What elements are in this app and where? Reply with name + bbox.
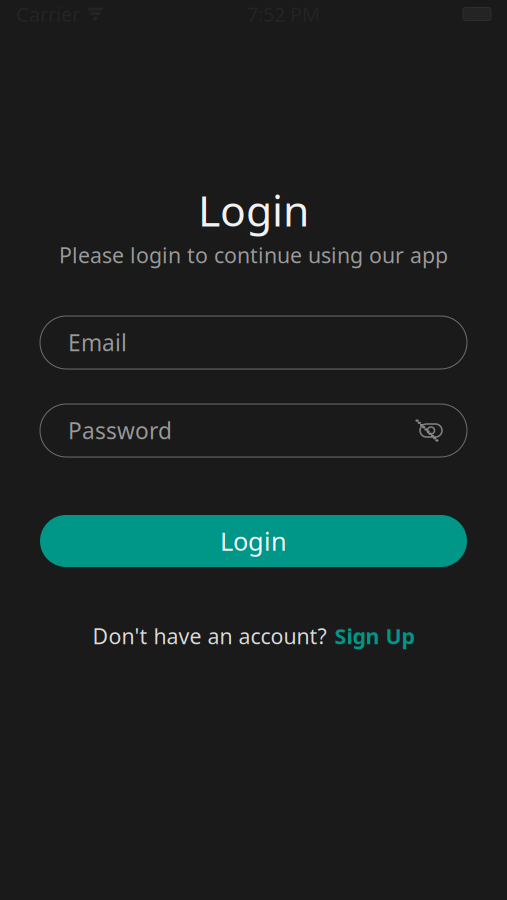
staticText: Login	[220, 524, 287, 558]
staticText: Sign Up	[334, 622, 414, 650]
button[interactable]: Password	[40, 404, 467, 457]
staticText: Please login to continue using our app	[59, 241, 448, 269]
staticText: Email	[68, 327, 127, 357]
staticText: Login	[198, 182, 309, 238]
button[interactable]: Login	[40, 515, 467, 567]
button[interactable]: Email	[40, 316, 467, 369]
staticText: Don't have an account?	[92, 622, 326, 650]
staticText: Password	[68, 415, 172, 445]
staticText: 7:52 PM	[247, 1, 320, 27]
button[interactable]: Sign Up	[334, 622, 414, 650]
staticText: Carrier	[16, 1, 80, 27]
